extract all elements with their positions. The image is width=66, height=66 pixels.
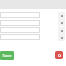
button[interactable] [0, 34, 40, 40]
button[interactable]: Save [0, 51, 14, 60]
button[interactable] [0, 27, 40, 33]
staticText: Save [2, 53, 12, 59]
button[interactable]: Remove [58, 12, 65, 19]
button[interactable]: Delete [55, 51, 63, 59]
button[interactable]: Remove [58, 27, 65, 34]
button[interactable]: Remove [58, 19, 65, 26]
button[interactable]: Remove [58, 34, 65, 41]
button[interactable] [0, 12, 40, 18]
button[interactable] [0, 20, 40, 26]
